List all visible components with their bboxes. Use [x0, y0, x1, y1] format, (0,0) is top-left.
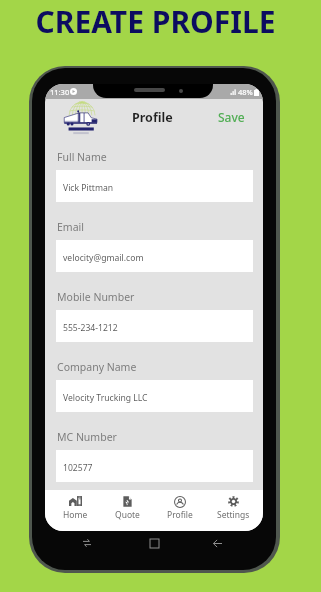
- staticText: 11:30: [50, 87, 70, 97]
- button[interactable]: Profile: [155, 490, 205, 531]
- button[interactable]: 555-234-1212: [56, 310, 253, 342]
- staticText: Velocity Trucking LLC: [63, 392, 148, 404]
- button[interactable]: Recent apps: [74, 530, 100, 556]
- staticText: 555-234-1212: [63, 322, 118, 334]
- staticText: Settings: [217, 509, 250, 521]
- button[interactable]: Settings: [208, 490, 258, 531]
- staticText: Quote: [115, 509, 140, 521]
- button[interactable]: Velocity Trucking LLC: [56, 380, 253, 412]
- staticText: 102577: [63, 462, 93, 474]
- button[interactable]: Back: [204, 530, 230, 556]
- staticText: Company Name: [57, 360, 137, 374]
- staticText: Save: [218, 109, 245, 125]
- button[interactable]: Save: [208, 102, 255, 132]
- staticText: MC Number: [57, 430, 117, 444]
- button[interactable]: 102577: [56, 450, 253, 482]
- button[interactable]: Home: [50, 490, 100, 531]
- button[interactable]: Quote: [102, 490, 152, 531]
- staticText: 48%: [238, 87, 253, 97]
- staticText: Mobile Number: [57, 290, 135, 304]
- staticText: Profile: [167, 509, 193, 521]
- button[interactable]: Vick Pittman: [56, 170, 253, 202]
- staticText: CREATE PROFILE: [35, 1, 276, 42]
- staticText: Vick Pittman: [63, 182, 114, 194]
- button[interactable]: velocity@gmail.com: [56, 240, 253, 272]
- staticText: Full Name: [57, 150, 107, 164]
- staticText: velocity@gmail.com: [63, 252, 144, 264]
- button[interactable]: Home: [141, 530, 167, 556]
- staticText: Home: [63, 509, 88, 521]
- staticText: Profile: [132, 109, 173, 126]
- staticText: Email: [57, 220, 84, 234]
